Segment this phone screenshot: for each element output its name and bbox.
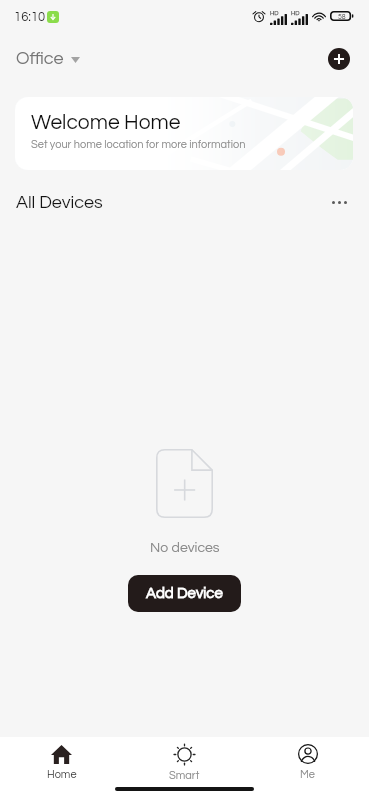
staticText: Me <box>300 769 315 780</box>
button[interactable]: Home <box>0 745 123 780</box>
staticText: All Devices <box>16 193 103 212</box>
staticText: Add Device <box>146 586 223 601</box>
button[interactable]: Welcome Home <box>15 97 353 170</box>
button[interactable]: Add Device <box>128 575 241 612</box>
staticText: Smart <box>169 770 200 781</box>
staticText: Set your home location for more informat… <box>31 139 246 150</box>
button[interactable]: Smart <box>123 744 246 781</box>
staticText: Home <box>47 769 77 780</box>
button[interactable]: More options <box>323 186 355 218</box>
staticText: Office <box>16 49 64 68</box>
staticText: 16:10 <box>14 10 46 23</box>
staticText: Welcome Home <box>31 112 181 134</box>
staticText: HD <box>270 10 279 16</box>
staticText: 58 <box>338 13 346 20</box>
button[interactable]: Office <box>16 49 80 68</box>
button[interactable]: Add device <box>328 48 350 70</box>
staticText: HD <box>291 10 300 16</box>
button[interactable]: Me <box>246 744 369 780</box>
staticText: No devices <box>150 541 220 555</box>
